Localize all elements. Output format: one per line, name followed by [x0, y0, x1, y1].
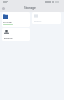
- staticText: Backup: [4, 36, 13, 39]
- staticText: Storage: [24, 6, 36, 10]
- staticText: Empty: [34, 19, 42, 22]
- staticText: 23.6 GB: [3, 20, 12, 23]
- button[interactable]: Account: [1, 6, 6, 11]
- button[interactable]: Backup: [2, 28, 30, 41]
- button[interactable]: Empty: [32, 12, 61, 24]
- button[interactable]: 23.6 GB: [2, 12, 30, 27]
